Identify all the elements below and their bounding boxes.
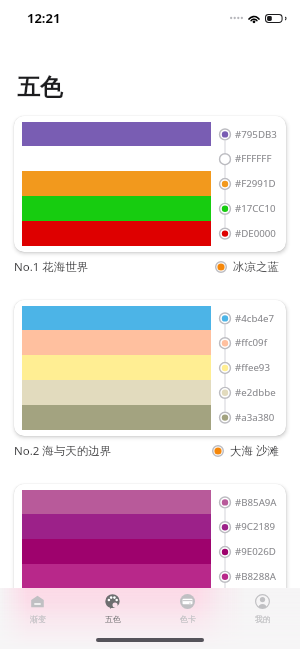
staticText: #a3a380 [235, 411, 275, 424]
staticText: 五色 [105, 614, 121, 624]
staticText: #9E026D [235, 545, 276, 558]
staticText: 大海 沙滩 [230, 443, 279, 459]
staticText: #B8288A [235, 570, 276, 583]
staticText: #ffee93 [235, 361, 270, 374]
staticText: #795DB3 [235, 128, 277, 141]
button[interactable]: #795DB3 [14, 116, 286, 275]
staticText: 我的 [255, 614, 271, 624]
button[interactable]: 五色 [75, 588, 150, 630]
staticText: 五色 [17, 73, 63, 102]
button[interactable]: 我的 [225, 588, 300, 630]
staticText: No.2 海与天的边界 [14, 443, 112, 459]
staticText: #4cb4e7 [235, 312, 274, 325]
staticText: #17CC10 [235, 202, 276, 215]
staticText: #FFFFFF [235, 152, 272, 165]
staticText: 冰凉之蓝 [233, 260, 279, 274]
staticText: 渐变 [30, 614, 46, 624]
staticText: #ffc09f [235, 336, 267, 349]
staticText: No.1 花海世界 [14, 259, 89, 275]
button[interactable]: 渐变 [0, 588, 75, 630]
staticText: #DE0000 [235, 227, 276, 240]
staticText: #F2991D [235, 177, 276, 190]
staticText: #e2dbbe [235, 386, 276, 399]
button[interactable]: #4cb4e7 [14, 300, 286, 459]
staticText: 色卡 [180, 614, 196, 624]
staticText: #9C2189 [235, 520, 276, 533]
staticText: #B85A9A [235, 496, 277, 509]
staticText: 12:21 [27, 9, 61, 27]
button[interactable]: 色卡 [150, 588, 225, 630]
button[interactable]: #B85A9A [14, 484, 286, 643]
staticText: #D84FA0 [235, 595, 276, 608]
